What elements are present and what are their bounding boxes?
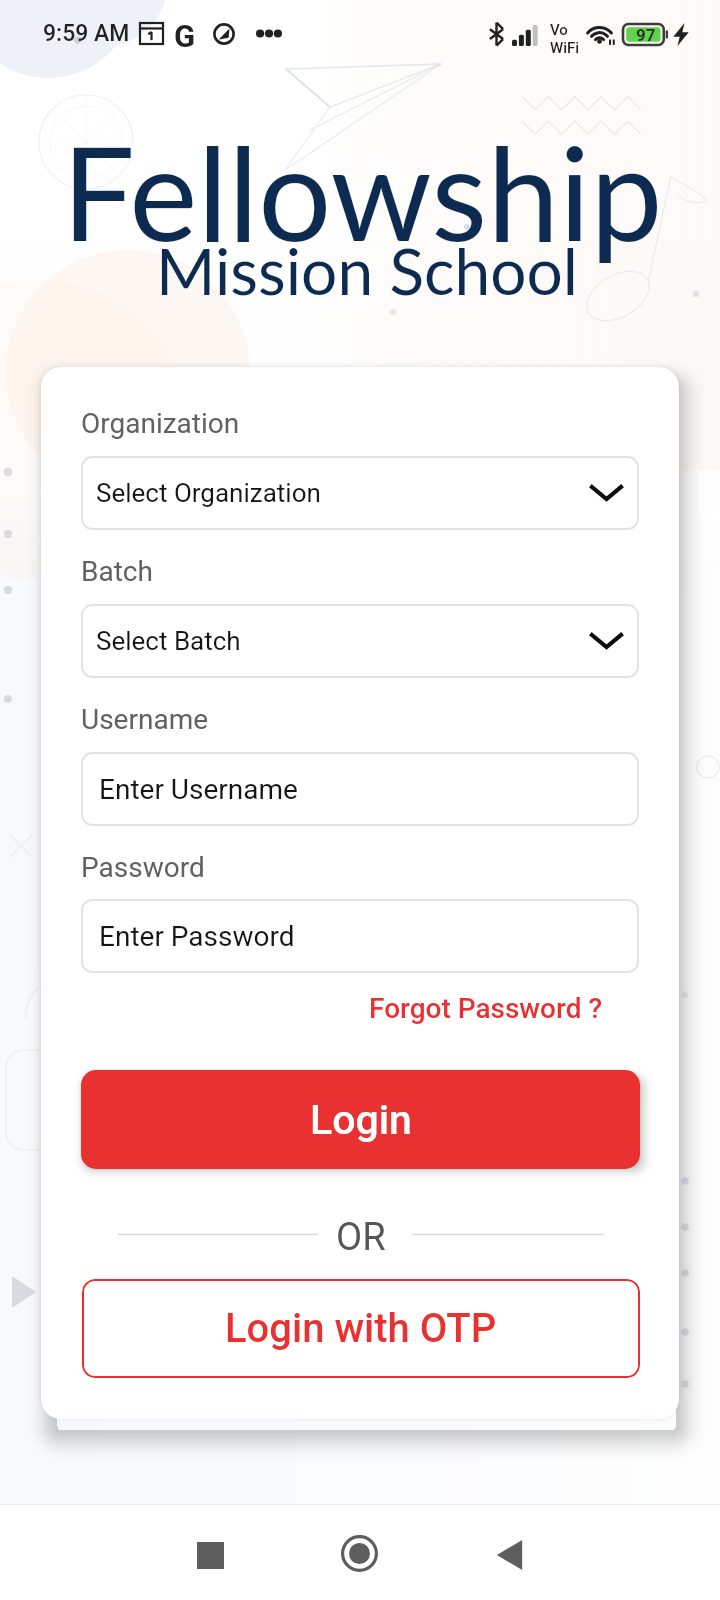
staticText: Username [81,703,209,736]
staticText: Login with OTP [225,1305,497,1352]
staticText: Vo [550,21,568,39]
staticText: Enter Password [99,920,295,953]
staticText: Forgot Password ? [369,992,602,1025]
button[interactable]: Enter Password [81,899,639,973]
button[interactable]: Back [459,1507,559,1600]
button[interactable]: Enter Username [81,752,639,826]
staticText: 97 [636,25,656,45]
staticText: Batch [81,555,153,588]
button[interactable]: Login with OTP [82,1279,640,1378]
staticText: Mission School [156,232,578,309]
button[interactable]: Home [309,1505,409,1600]
staticText: 9:59 AM [43,20,130,47]
staticText: WiFi [550,39,580,57]
button[interactable]: Login [81,1070,640,1169]
staticText: Select Batch [96,626,241,656]
staticText: Password [81,851,205,884]
button[interactable]: Select Organization [81,456,639,530]
button[interactable]: Forgot Password ? [363,987,608,1030]
button[interactable]: Recent apps [160,1507,260,1600]
staticText: Fellowship [62,114,663,269]
staticText: Organization [81,407,240,440]
staticText: OR [336,1215,386,1260]
staticText: Login [310,1096,412,1144]
staticText: Select Organization [96,478,321,508]
staticText: Enter Username [99,773,298,806]
button[interactable]: Select Batch [81,604,639,678]
staticText: G [174,18,196,54]
